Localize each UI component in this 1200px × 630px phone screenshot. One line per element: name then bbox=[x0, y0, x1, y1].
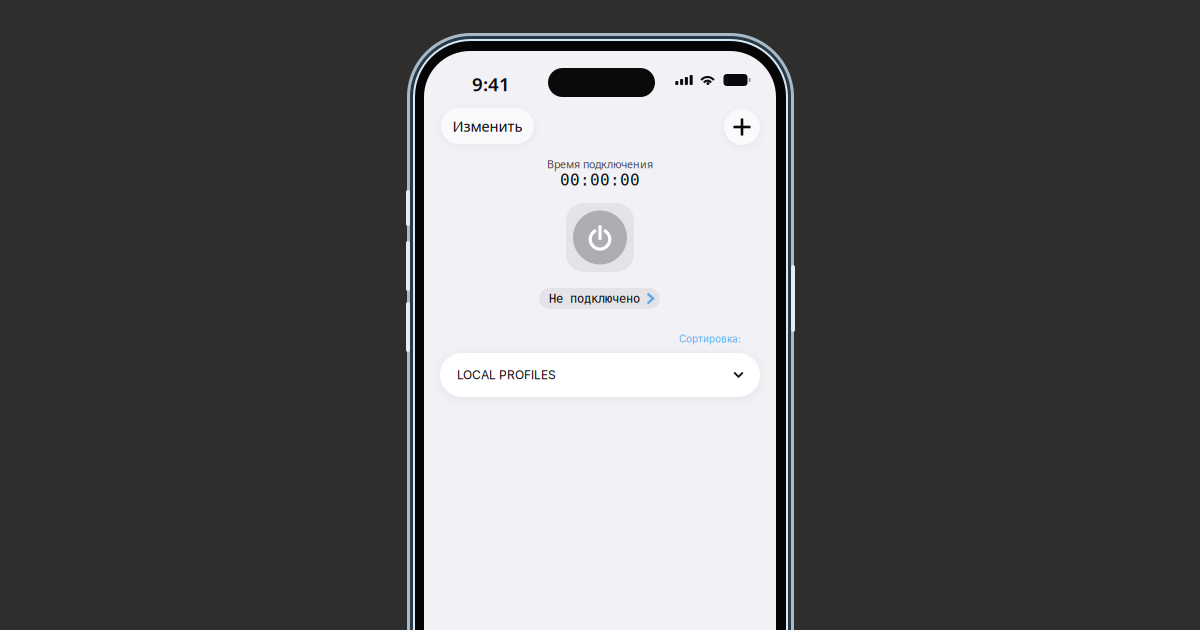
staticText: Изменить bbox=[452, 116, 522, 136]
button[interactable]: Изменить bbox=[441, 108, 534, 144]
staticText: LOCAL PROFILES bbox=[457, 368, 556, 382]
button[interactable]: LOCAL PROFILES bbox=[440, 353, 760, 397]
staticText: Не подключено bbox=[549, 292, 640, 305]
staticText: Время подключения bbox=[547, 157, 653, 171]
staticText: 9:41 bbox=[472, 72, 510, 96]
button[interactable]: Add bbox=[724, 109, 760, 145]
staticText: Сортировка: bbox=[679, 333, 741, 345]
button[interactable]: Connect bbox=[566, 203, 634, 272]
button[interactable]: Не подключено bbox=[539, 288, 660, 309]
staticText: 00:00:00 bbox=[560, 171, 640, 189]
button[interactable]: Сортировка: bbox=[424, 333, 741, 345]
